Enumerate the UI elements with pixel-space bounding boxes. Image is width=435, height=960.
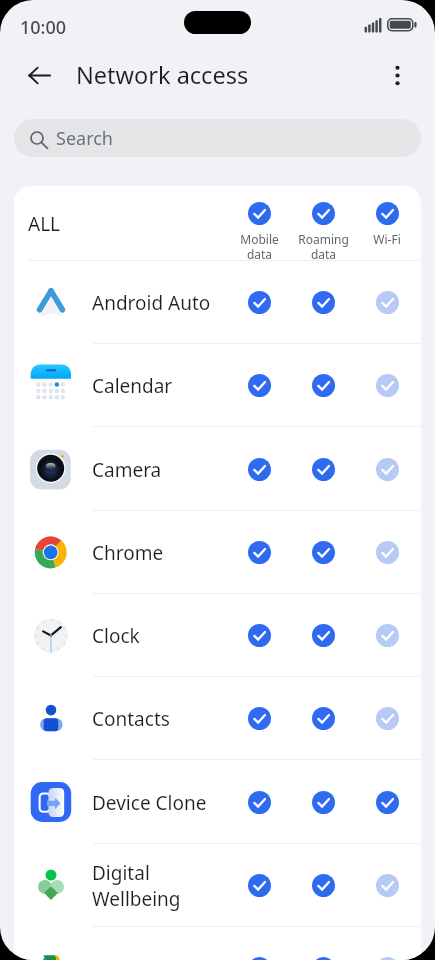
button[interactable] xyxy=(227,511,291,594)
staticText: Network access xyxy=(76,59,249,91)
staticText: Android Auto xyxy=(92,290,211,316)
button[interactable]: Contacts xyxy=(14,677,421,760)
staticText: Digital Wellbeing xyxy=(92,860,181,911)
button[interactable]: Mobile data xyxy=(227,202,291,262)
staticText: Mobile data xyxy=(240,231,279,262)
button[interactable]: Chrome xyxy=(14,511,421,594)
staticText: 10:00 xyxy=(20,15,67,40)
staticText: Roaming data xyxy=(298,231,349,262)
button[interactable] xyxy=(227,344,291,427)
button[interactable] xyxy=(355,677,419,760)
button[interactable] xyxy=(355,428,419,511)
button[interactable] xyxy=(355,261,419,344)
button[interactable]: Drive xyxy=(14,927,421,960)
button[interactable]: Camera xyxy=(14,428,421,511)
button[interactable]: Digital Wellbeing xyxy=(14,844,421,927)
button[interactable]: Wi-Fi xyxy=(355,202,419,247)
button[interactable]: Roaming data xyxy=(291,202,355,262)
button[interactable] xyxy=(355,927,419,960)
button[interactable] xyxy=(291,344,355,427)
button[interactable]: Calendar xyxy=(14,344,421,427)
button[interactable] xyxy=(227,594,291,677)
button[interactable]: Clock xyxy=(14,594,421,677)
button[interactable] xyxy=(355,344,419,427)
staticText: Wi-Fi xyxy=(373,231,401,247)
button[interactable]: Device Clone xyxy=(14,761,421,844)
button[interactable] xyxy=(291,761,355,844)
staticText: Camera xyxy=(92,457,162,483)
button[interactable] xyxy=(227,761,291,844)
button[interactable] xyxy=(355,594,419,677)
staticText: Chrome xyxy=(92,540,164,566)
button[interactable] xyxy=(355,511,419,594)
button[interactable]: Search xyxy=(14,119,421,157)
button[interactable] xyxy=(291,844,355,927)
button[interactable]: Android Auto xyxy=(14,261,421,344)
button[interactable] xyxy=(227,428,291,511)
button[interactable] xyxy=(291,428,355,511)
button[interactable] xyxy=(291,677,355,760)
button[interactable] xyxy=(355,844,419,927)
staticText: Contacts xyxy=(92,706,170,732)
button[interactable]: Back xyxy=(17,53,61,97)
staticText: ALL xyxy=(28,211,61,237)
button[interactable] xyxy=(227,927,291,960)
staticText: Search xyxy=(56,126,113,151)
button[interactable] xyxy=(291,927,355,960)
button[interactable] xyxy=(227,261,291,344)
button[interactable] xyxy=(291,511,355,594)
button[interactable] xyxy=(355,761,419,844)
button[interactable] xyxy=(227,844,291,927)
staticText: Calendar xyxy=(92,373,173,399)
staticText: Device Clone xyxy=(92,790,207,816)
button[interactable]: More options xyxy=(376,54,418,96)
button[interactable] xyxy=(291,594,355,677)
staticText: Clock xyxy=(92,623,140,649)
button[interactable] xyxy=(291,261,355,344)
button[interactable] xyxy=(227,677,291,760)
